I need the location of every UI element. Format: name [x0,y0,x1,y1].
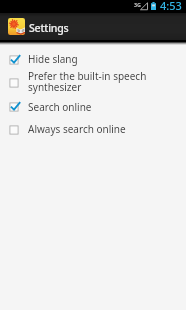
staticText: Search online [28,103,92,114]
staticText: Settings [29,21,69,35]
button[interactable]: App icon [0,13,186,40]
button[interactable]: Search online [0,95,186,119]
other: App icon [8,18,25,35]
staticText: Always search online [28,125,126,136]
button[interactable]: Prefer the built-in speech synthesizer [0,71,186,95]
staticText: Prefer the built-in speech synthesizer [28,72,180,94]
staticText: Hide slang [28,55,78,66]
staticText: 4:53 [160,0,182,11]
staticText: 3G [134,1,141,8]
button[interactable]: Always search online [0,119,186,140]
button[interactable]: Hide slang [0,48,186,71]
